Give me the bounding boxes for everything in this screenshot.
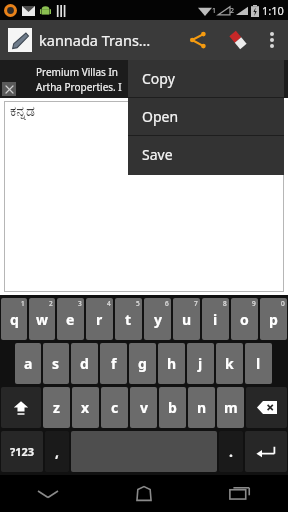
- button[interactable]: Recent apps: [192, 475, 288, 512]
- staticText: ?123: [10, 444, 35, 459]
- button[interactable]: n: [188, 387, 215, 428]
- staticText: k: [225, 354, 234, 373]
- button[interactable]: ಕನ್ನಡ: [4, 101, 284, 292]
- staticText: o: [240, 310, 249, 329]
- button[interactable]: b: [159, 387, 186, 428]
- button[interactable]: d: [71, 343, 98, 384]
- staticText: h: [167, 354, 177, 373]
- staticText: 1: [212, 6, 217, 16]
- staticText: m: [224, 398, 238, 417]
- button[interactable]: o: [231, 298, 258, 340]
- button[interactable]: Enter: [245, 431, 287, 472]
- staticText: 5: [136, 299, 140, 308]
- staticText: l: [256, 354, 261, 373]
- staticText: .: [229, 442, 233, 461]
- staticText: p: [269, 310, 278, 329]
- button[interactable]: Share: [178, 20, 218, 60]
- staticText: a: [24, 354, 33, 373]
- button[interactable]: j: [187, 343, 214, 384]
- button[interactable]: m: [217, 387, 244, 428]
- staticText: 8: [223, 299, 227, 308]
- button[interactable]: Close ad: [2, 82, 16, 96]
- staticText: i: [213, 310, 218, 329]
- button[interactable]: More options: [258, 20, 286, 60]
- button[interactable]: g: [129, 343, 156, 384]
- staticText: 4: [107, 299, 111, 308]
- button[interactable]: s: [43, 343, 69, 384]
- button[interactable]: Clear: [218, 20, 258, 60]
- staticText: b: [168, 398, 177, 417]
- staticText: 3: [78, 299, 82, 308]
- staticText: z: [53, 398, 60, 417]
- staticText: ,: [55, 442, 59, 461]
- staticText: f: [111, 354, 117, 373]
- staticText: e: [66, 310, 75, 329]
- button[interactable]: q: [1, 298, 27, 340]
- button[interactable]: i: [202, 298, 229, 340]
- staticText: kannada Trans…: [39, 30, 178, 50]
- button[interactable]: Close ad: [0, 60, 288, 98]
- button[interactable]: p: [260, 298, 287, 340]
- button[interactable]: l: [245, 343, 272, 384]
- staticText: v: [140, 398, 148, 417]
- staticText: 1: [21, 299, 25, 308]
- staticText: q: [10, 310, 19, 329]
- button[interactable]: ?123: [1, 431, 43, 472]
- button[interactable]: v: [130, 387, 157, 428]
- button[interactable]: r: [86, 298, 113, 340]
- staticText: Premium Villas In: [36, 65, 118, 79]
- staticText: 2: [230, 6, 235, 16]
- staticText: 9: [252, 299, 256, 308]
- staticText: ಕನ್ನಡ: [10, 105, 35, 119]
- button[interactable]: z: [43, 387, 70, 428]
- staticText: Save: [142, 145, 173, 164]
- button[interactable]: w: [29, 298, 55, 340]
- button[interactable]: Open: [128, 98, 284, 135]
- staticText: Open: [142, 107, 179, 126]
- button[interactable]: u: [173, 298, 200, 340]
- staticText: Artha Properties. I: [36, 80, 122, 94]
- staticText: 1:10: [262, 3, 284, 18]
- button[interactable]: Home: [96, 475, 192, 512]
- staticText: t: [125, 310, 132, 329]
- staticText: d: [80, 354, 89, 373]
- staticText: s: [52, 354, 60, 373]
- button[interactable]: .: [219, 431, 243, 472]
- staticText: x: [81, 398, 90, 417]
- staticText: g: [138, 354, 147, 373]
- button[interactable]: c: [101, 387, 128, 428]
- staticText: 0: [281, 299, 285, 308]
- button[interactable]: ,: [45, 431, 69, 472]
- staticText: u: [182, 310, 192, 329]
- button[interactable]: h: [158, 343, 185, 384]
- staticText: 6: [165, 299, 169, 308]
- button[interactable]: f: [100, 343, 127, 384]
- staticText: y: [154, 310, 162, 329]
- button[interactable]: t: [115, 298, 142, 340]
- button[interactable]: x: [72, 387, 99, 428]
- button[interactable]: a: [15, 343, 41, 384]
- staticText: c: [111, 398, 119, 417]
- button[interactable]: e: [57, 298, 84, 340]
- staticText: 7: [194, 299, 198, 308]
- button[interactable]: k: [216, 343, 243, 384]
- staticText: w: [36, 310, 48, 329]
- staticText: r: [96, 310, 103, 329]
- staticText: n: [197, 398, 207, 417]
- button[interactable]: Delete: [246, 387, 287, 428]
- staticText: Copy: [142, 69, 175, 88]
- button[interactable]: Hide keyboard: [0, 475, 96, 512]
- button[interactable]: y: [144, 298, 171, 340]
- button[interactable]: Copy: [128, 60, 284, 97]
- staticText: j: [198, 354, 203, 373]
- button[interactable]: Save: [128, 136, 284, 173]
- staticText: 2: [49, 299, 53, 308]
- button[interactable]: Shift: [1, 387, 41, 428]
